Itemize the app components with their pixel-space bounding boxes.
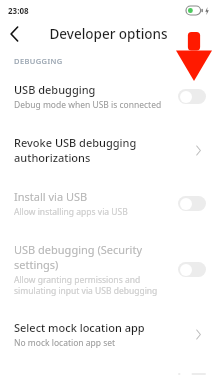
staticText: No mock location app set [14, 337, 116, 349]
staticText: Debug mode when USB is connected [14, 99, 162, 111]
staticText: USB debugging [14, 82, 96, 97]
staticText: Allow granting permissions and simulatin… [14, 274, 172, 296]
button[interactable]: Select mock location app [0, 311, 216, 358]
staticText: Allow installing apps via USB [14, 206, 128, 218]
staticText: Revoke USB debugging authorizations [14, 135, 184, 165]
staticText: USB debugging (Security settings) [14, 242, 172, 272]
staticText: Developer options [49, 25, 168, 43]
staticText: Install via USB [14, 189, 88, 204]
button[interactable]: Back [0, 20, 28, 48]
staticText: 23:08 [8, 5, 29, 16]
staticText: DEBUGGING [14, 56, 63, 66]
staticText: Select mock location app [14, 320, 145, 335]
button[interactable]: Install via USB [0, 180, 216, 227]
button[interactable]: USB debugging [0, 73, 216, 120]
button[interactable]: Revoke USB debugging authorizations [0, 126, 216, 174]
button[interactable]: USB debugging (Security settings) [0, 233, 216, 305]
